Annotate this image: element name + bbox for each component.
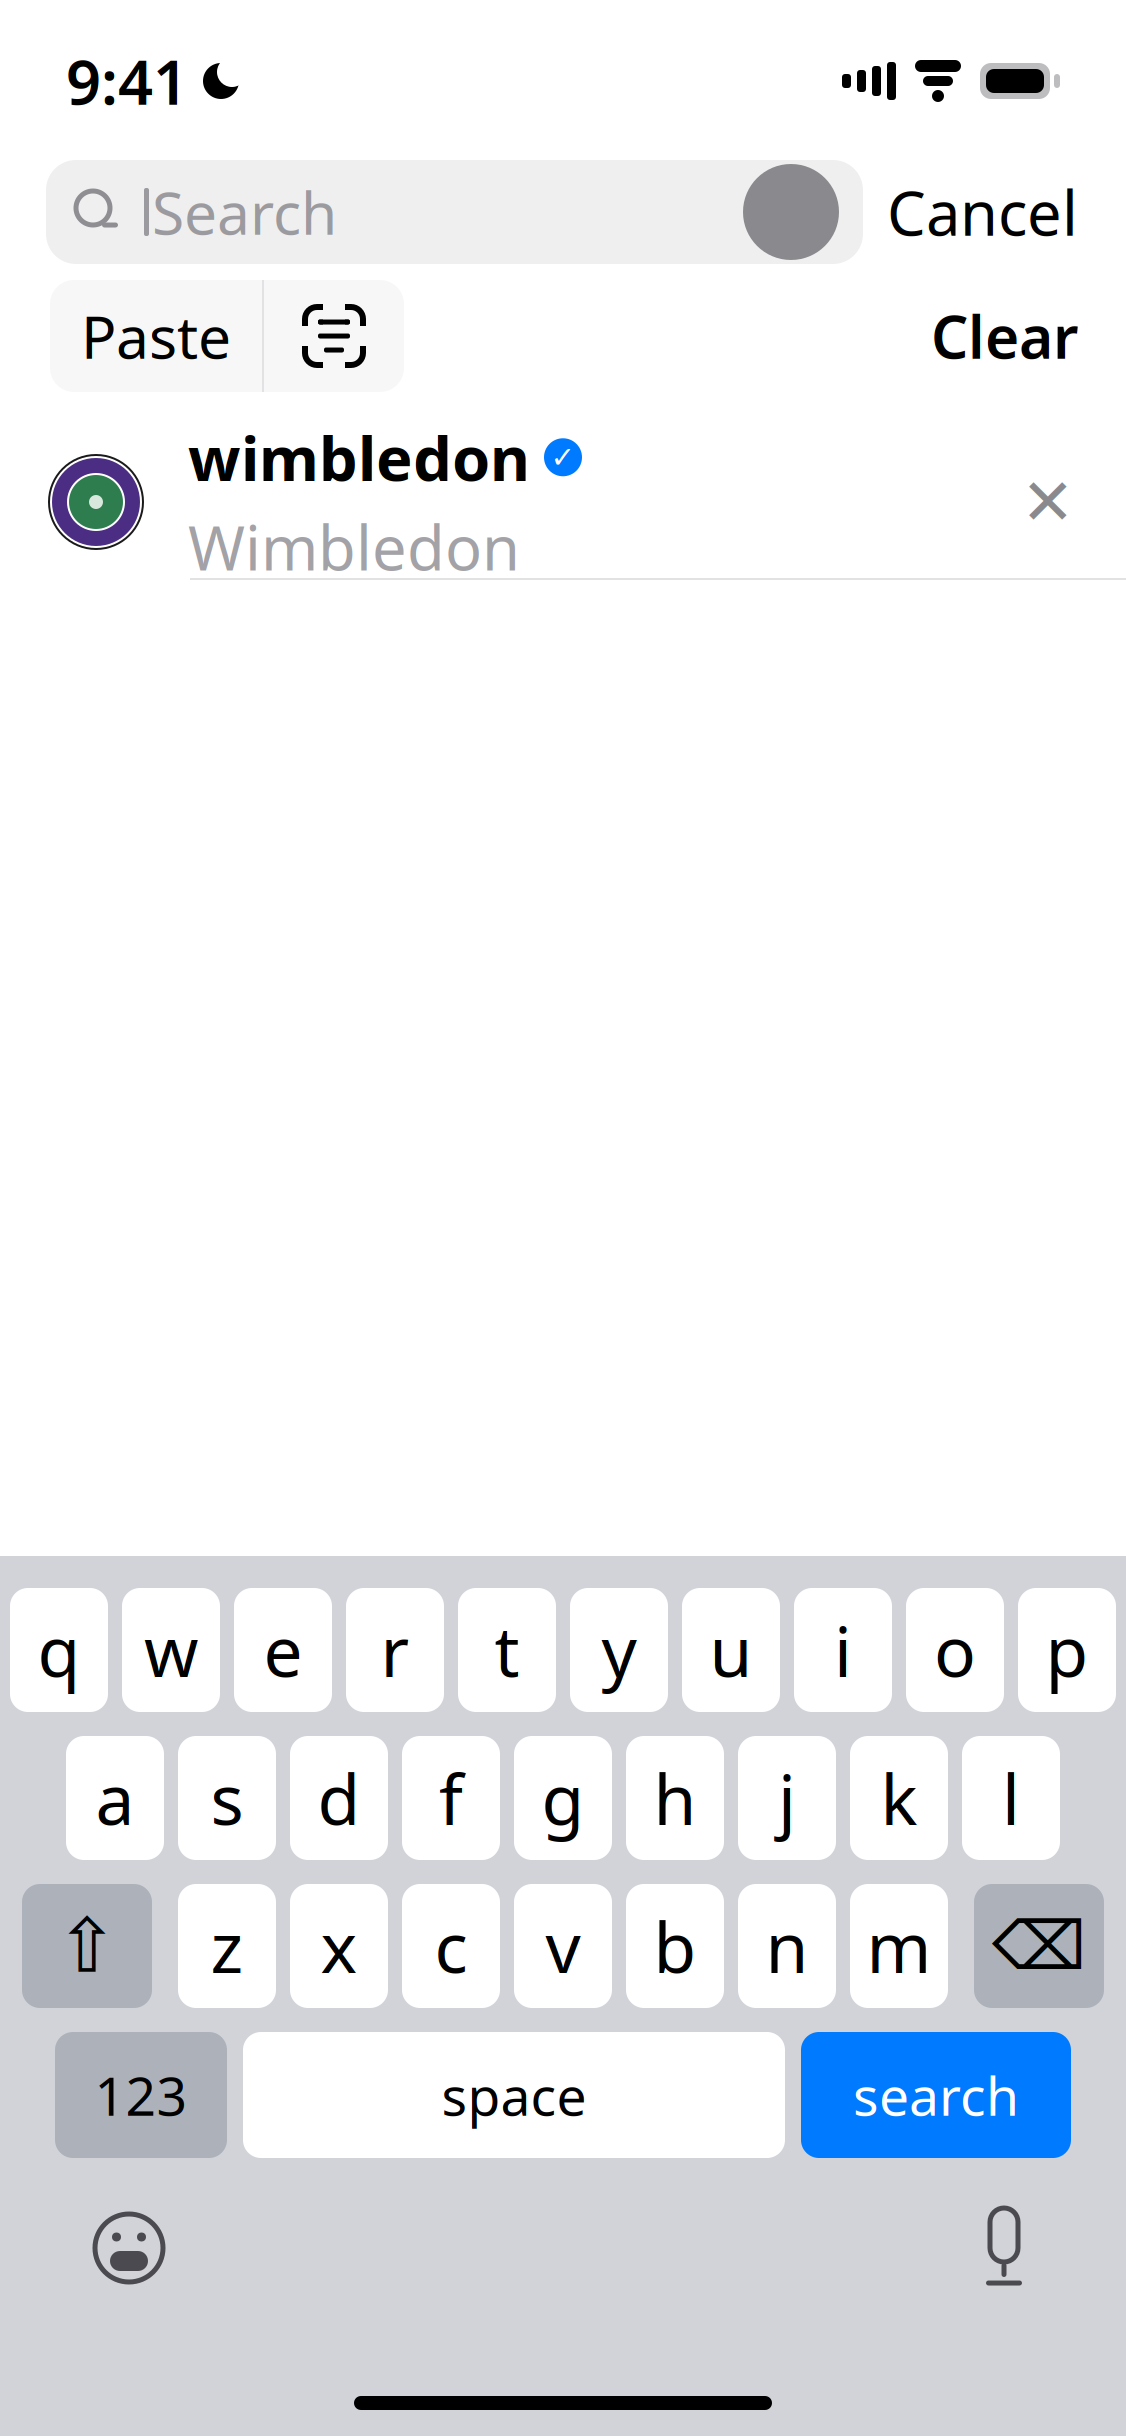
button[interactable]: f [402,1736,500,1860]
staticText: z [210,1900,243,1992]
staticText: ✓ [550,441,575,474]
button[interactable]: search [801,2032,1071,2158]
staticText: g [541,1752,584,1844]
button[interactable]: b [626,1884,724,2008]
button[interactable]: i [794,1588,892,1712]
button[interactable]: Shift [22,1884,152,2008]
staticText: n [765,1900,808,1992]
button[interactable]: g [514,1736,612,1860]
staticText: e [263,1604,302,1696]
staticText: ⇧ [55,1904,118,1988]
button[interactable]: wimbledon [0,426,1126,578]
button[interactable]: Clear [905,280,1104,392]
button[interactable]: v [514,1884,612,2008]
staticText: f [439,1752,463,1844]
staticText: d [317,1752,360,1844]
staticText: Clear [931,297,1078,375]
staticText: b [653,1900,696,1992]
button[interactable]: Scan Text [264,280,404,392]
button[interactable]: l [962,1736,1060,1860]
button[interactable]: 123 [55,2032,227,2158]
staticText: l [1002,1752,1020,1844]
staticText: r [380,1604,409,1696]
staticText: x [320,1900,357,1992]
staticText: search [853,2060,1019,2130]
staticText: space [441,2060,586,2130]
button[interactable]: o [906,1588,1004,1712]
button[interactable]: k [850,1736,948,1860]
button[interactable]: w [122,1588,220,1712]
staticText: 123 [94,2060,187,2130]
staticText: s [210,1752,243,1844]
button[interactable]: j [738,1736,836,1860]
staticText: q [37,1604,80,1696]
staticText: v [545,1900,580,1992]
button[interactable]: e [234,1588,332,1712]
staticText: a [95,1752,134,1844]
staticText: t [494,1604,519,1696]
button[interactable]: space [243,2032,785,2158]
button[interactable]: s [178,1736,276,1860]
button[interactable]: d [290,1736,388,1860]
button[interactable]: Delete [974,1884,1104,2008]
button[interactable]: c [402,1884,500,2008]
staticText: k [880,1752,917,1844]
button[interactable]: Dictation [974,2204,1034,2292]
staticText: ⌫ [992,1908,1086,1984]
staticText: wimbledon [188,417,530,498]
button[interactable]: u [682,1588,780,1712]
button[interactable]: Cancel [863,160,1102,264]
staticText: j [778,1752,796,1844]
staticText: o [934,1604,976,1696]
button[interactable]: r [346,1588,444,1712]
button[interactable]: n [738,1884,836,2008]
staticText: Paste [81,297,231,375]
staticText: Cancel [887,171,1078,253]
button[interactable]: p [1018,1588,1116,1712]
button[interactable]: Emoji [92,2211,166,2285]
staticText: w [144,1604,198,1696]
staticText: ✕ [1021,466,1075,538]
staticText: Search [152,173,337,251]
button[interactable]: m [850,1884,948,2008]
staticText: c [434,1900,467,1992]
button[interactable]: z [178,1884,276,2008]
staticText: 9:41 [66,40,188,122]
staticText: y [601,1604,636,1696]
button[interactable]: Paste [50,280,262,392]
button[interactable]: h [626,1736,724,1860]
staticText: i [834,1604,852,1696]
staticText: m [866,1900,931,1992]
staticText: u [709,1604,752,1696]
button[interactable]: a [66,1736,164,1860]
button[interactable]: q [10,1588,108,1712]
staticText: p [1045,1604,1088,1696]
staticText: Wimbledon [188,506,520,587]
staticText: h [653,1752,696,1844]
button[interactable]: y [570,1588,668,1712]
button[interactable]: x [290,1884,388,2008]
button[interactable]: t [458,1588,556,1712]
